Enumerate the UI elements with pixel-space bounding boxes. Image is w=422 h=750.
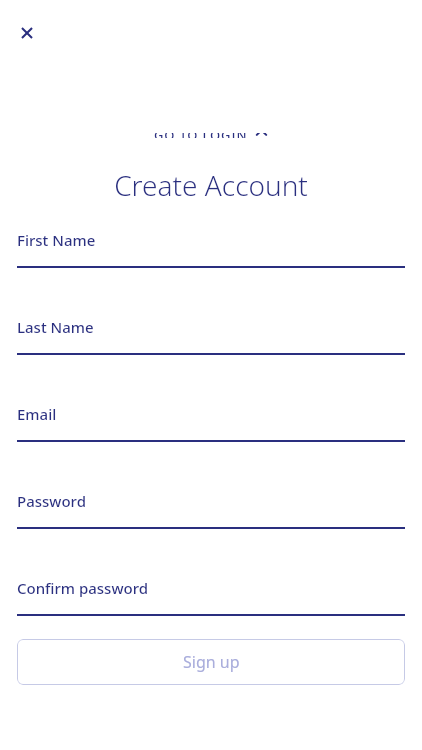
staticText: Create Account: [0, 166, 422, 204]
button[interactable]: Email: [17, 404, 405, 442]
button[interactable]: Last Name: [17, 317, 405, 355]
button[interactable]: Sign up: [17, 639, 405, 685]
staticText: Password: [17, 491, 86, 511]
button[interactable]: GO TO LOGIN: [0, 133, 422, 145]
staticText: Email: [17, 404, 57, 424]
staticText: First Name: [17, 230, 96, 250]
button[interactable]: Password: [17, 491, 405, 529]
button[interactable]: Confirm password: [17, 578, 405, 616]
button[interactable]: First Name: [17, 230, 405, 268]
staticText: Last Name: [17, 317, 94, 337]
staticText: Sign up: [183, 651, 240, 673]
staticText: Confirm password: [17, 578, 149, 598]
staticText: GO TO LOGIN: [154, 133, 248, 138]
button[interactable]: Close: [11, 17, 43, 49]
